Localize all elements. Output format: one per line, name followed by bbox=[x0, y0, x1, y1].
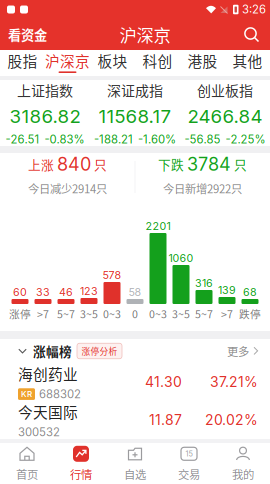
staticText: 11568.17 bbox=[98, 105, 171, 128]
staticText: 上证指数 bbox=[17, 80, 73, 100]
staticText: 只 bbox=[234, 155, 247, 173]
button[interactable]: 今天国际 bbox=[0, 401, 270, 439]
staticText: 300532 bbox=[18, 425, 60, 439]
staticText: 沪深京 bbox=[119, 22, 170, 47]
button[interactable]: 首页 bbox=[0, 443, 54, 484]
staticText: 316 bbox=[195, 276, 213, 289]
staticText: 139 bbox=[218, 283, 236, 296]
button[interactable]: 我的 bbox=[216, 443, 270, 484]
staticText: 1060 bbox=[168, 251, 193, 264]
button[interactable]: 深证成指 bbox=[90, 72, 180, 154]
staticText: 只 bbox=[94, 155, 107, 173]
staticText: 0 bbox=[132, 306, 138, 321]
staticText: 3784 bbox=[187, 153, 231, 175]
button[interactable]: 搜索 bbox=[234, 19, 270, 50]
staticText: 68 bbox=[243, 285, 257, 298]
staticText: 今日减少2914只 bbox=[28, 180, 107, 197]
staticText: 创业板指 bbox=[197, 80, 253, 100]
staticText: -1.60% bbox=[138, 133, 176, 146]
staticText: 首页 bbox=[16, 466, 38, 482]
staticText: 跌停 bbox=[239, 306, 261, 321]
staticText: 深证成指 bbox=[107, 80, 163, 100]
staticText: 15 bbox=[185, 449, 192, 458]
staticText: 0~3 bbox=[149, 306, 167, 321]
staticText: 33 bbox=[36, 285, 50, 298]
staticText: 123 bbox=[80, 284, 98, 297]
staticText: 60 bbox=[13, 285, 27, 298]
button[interactable]: 股指 bbox=[0, 50, 45, 76]
button[interactable]: 上证指数 bbox=[0, 72, 90, 154]
staticText: 看资金 bbox=[8, 25, 47, 44]
staticText: 今日新增2922只 bbox=[163, 180, 242, 197]
staticText: -0.83% bbox=[44, 133, 84, 146]
staticText: 其他 bbox=[232, 50, 262, 71]
button[interactable]: 涨幅榜 bbox=[18, 337, 72, 365]
staticText: 我的 bbox=[232, 466, 254, 482]
button[interactable]: 涨停分析 bbox=[72, 343, 122, 359]
staticText: 41.30 bbox=[145, 373, 182, 390]
staticText: 自选 bbox=[124, 466, 146, 482]
staticText: 沪深京 bbox=[45, 50, 90, 71]
staticText: >7 bbox=[221, 306, 233, 321]
staticText: -2.25% bbox=[225, 133, 265, 146]
button[interactable]: 创业板指 bbox=[180, 72, 270, 154]
staticText: 涨停 bbox=[9, 306, 31, 321]
staticText: 46 bbox=[59, 285, 73, 298]
staticText: 科创 bbox=[142, 50, 172, 71]
button[interactable]: 自选 bbox=[108, 443, 162, 484]
staticText: 板块 bbox=[97, 50, 127, 71]
staticText: 涨停分析 bbox=[81, 345, 117, 357]
staticText: -188.21 bbox=[94, 133, 133, 146]
staticText: 更多 bbox=[227, 343, 249, 359]
staticText: 58 bbox=[128, 285, 141, 298]
staticText: 今天国际 bbox=[18, 401, 78, 422]
staticText: 5~7 bbox=[57, 306, 75, 321]
staticText: 2201 bbox=[145, 219, 170, 232]
button[interactable]: 板块 bbox=[90, 50, 135, 76]
button[interactable]: 其他 bbox=[225, 50, 270, 76]
button[interactable]: 港股 bbox=[180, 50, 225, 76]
staticText: 3:26 bbox=[242, 3, 266, 16]
staticText: 688302 bbox=[39, 387, 81, 401]
staticText: 海创药业 bbox=[18, 363, 78, 384]
button[interactable]: 沪深京 bbox=[45, 50, 90, 76]
staticText: 涨幅榜 bbox=[33, 342, 72, 360]
button[interactable]: 更多 bbox=[227, 337, 259, 365]
staticText: -26.51 bbox=[5, 133, 39, 146]
staticText: 37.21% bbox=[210, 373, 258, 390]
button[interactable]: 海创药业 bbox=[0, 363, 270, 401]
button[interactable]: 看资金 bbox=[0, 19, 56, 50]
button[interactable]: 行情 bbox=[54, 443, 108, 484]
staticText: 交易 bbox=[178, 466, 200, 482]
staticText: 840 bbox=[57, 153, 91, 175]
staticText: 2466.84 bbox=[187, 105, 262, 128]
staticText: 3186.82 bbox=[9, 105, 80, 128]
staticText: 11.87 bbox=[149, 411, 182, 428]
button[interactable]: 科创 bbox=[135, 50, 180, 76]
button[interactable]: 15 bbox=[162, 443, 216, 484]
staticText: -56.85 bbox=[184, 133, 220, 146]
staticText: 行情 bbox=[70, 466, 92, 482]
staticText: 3~5 bbox=[172, 306, 190, 321]
staticText: 20.02% bbox=[205, 411, 258, 428]
staticText: 0~3 bbox=[103, 306, 121, 321]
staticText: KR bbox=[21, 389, 32, 399]
staticText: >7 bbox=[37, 306, 49, 321]
staticText: 3~5 bbox=[80, 306, 98, 321]
staticText: 股指 bbox=[7, 50, 37, 71]
staticText: 上涨 bbox=[28, 155, 54, 173]
staticText: 港股 bbox=[187, 50, 217, 71]
staticText: 578 bbox=[102, 268, 121, 281]
staticText: 下跌 bbox=[158, 155, 184, 173]
staticText: 5~7 bbox=[195, 306, 213, 321]
